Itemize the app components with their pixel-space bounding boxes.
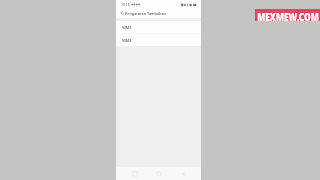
button[interactable]: Back: [119, 10, 125, 16]
staticText: SIM1: [122, 25, 132, 30]
button[interactable]: SIM1: [116, 21, 201, 33]
button[interactable]: Recents: [128, 167, 141, 180]
staticText: 10:18: [121, 2, 130, 7]
staticText: SIM2: [122, 38, 132, 43]
staticText: MEXMEW.COM: [253, 9, 320, 21]
staticText: Pengaturan Tambahan: [125, 11, 166, 16]
button[interactable]: SIM2: [116, 34, 201, 46]
